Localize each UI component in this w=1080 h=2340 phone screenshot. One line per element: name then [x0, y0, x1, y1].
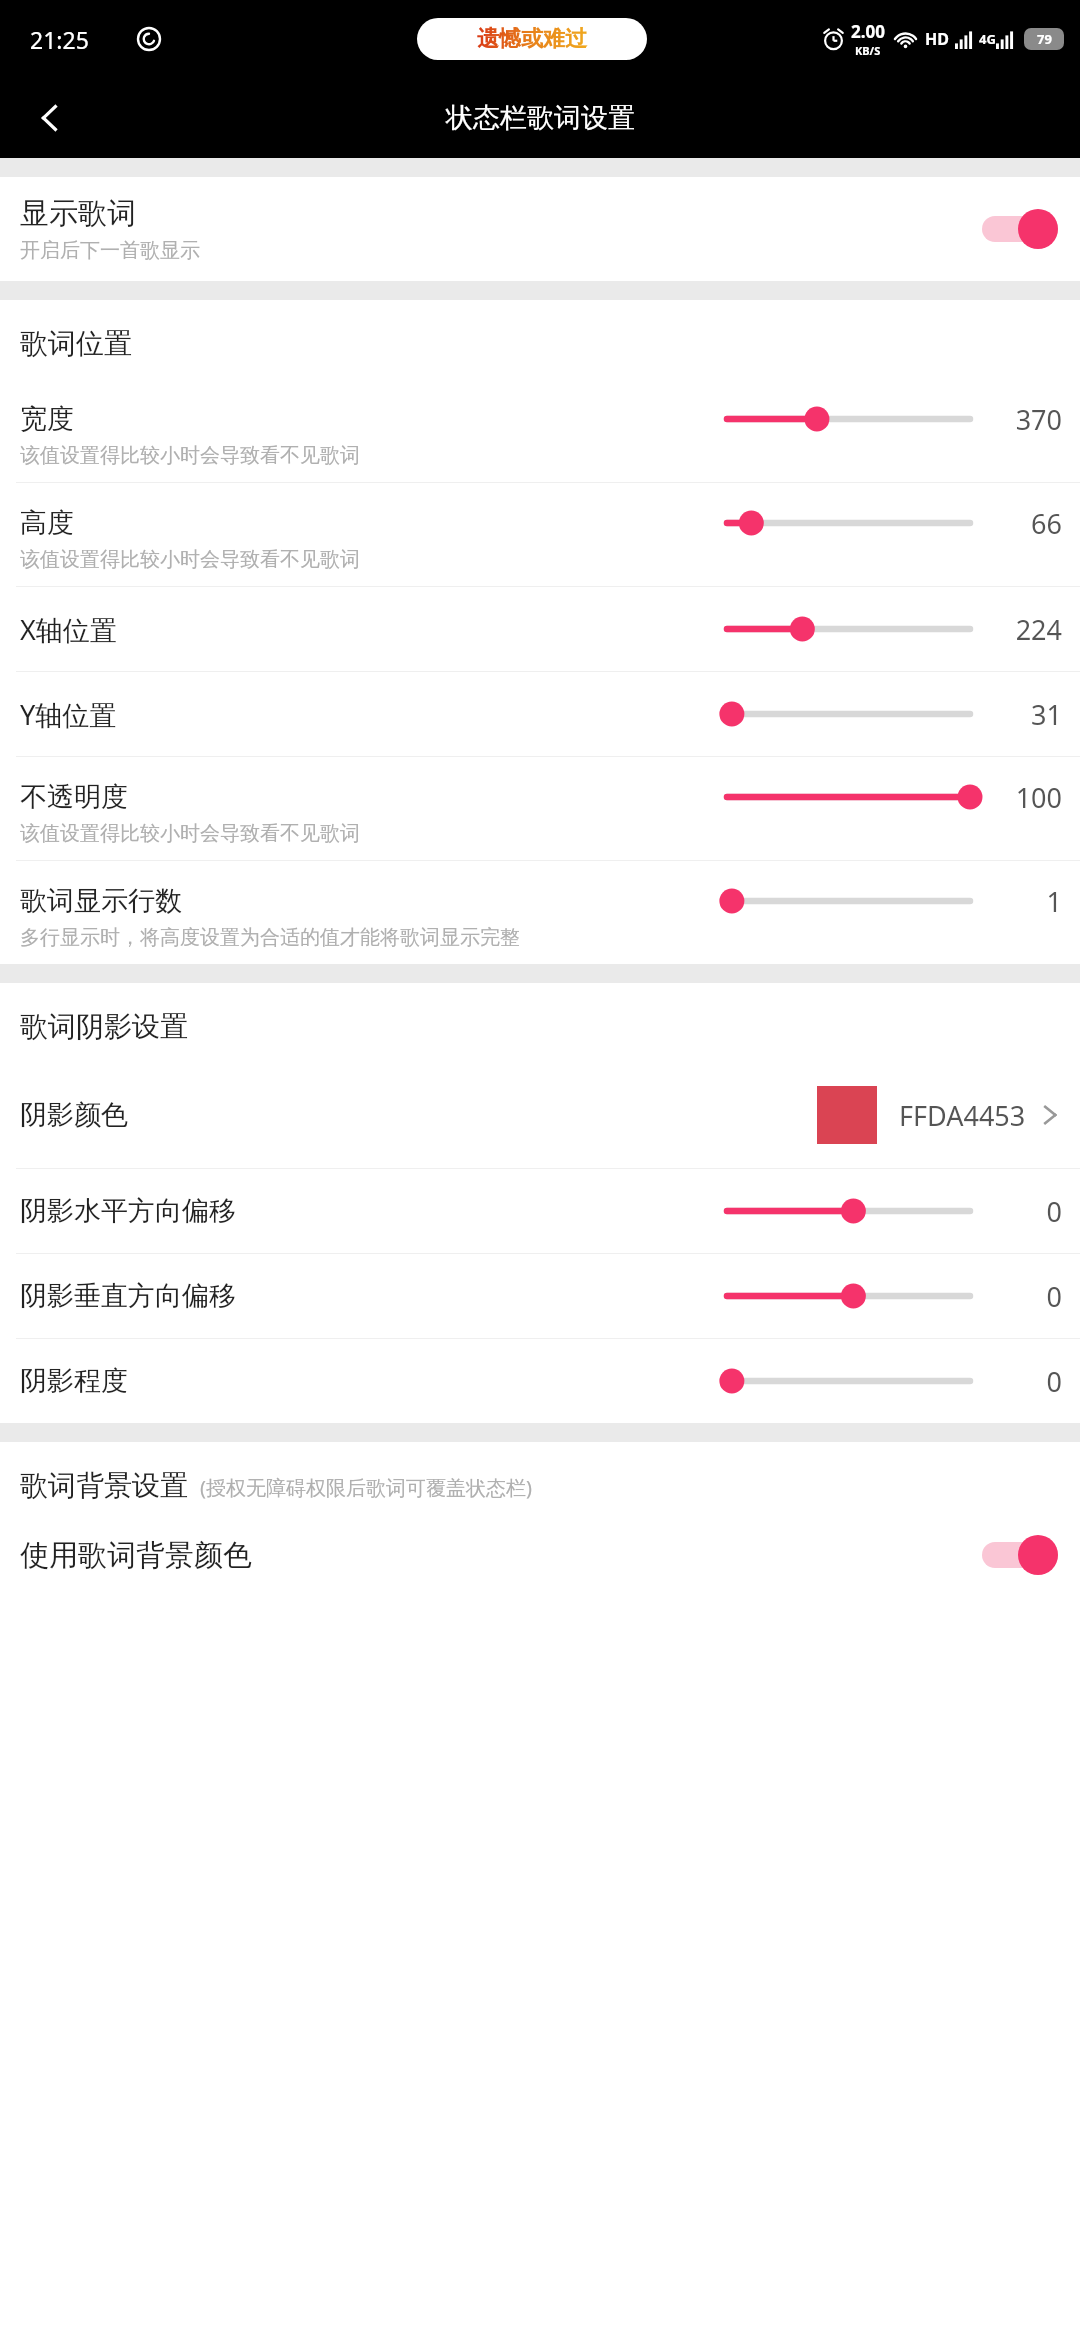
button[interactable]: 歌词显示行数: [0, 861, 1080, 964]
staticText: 0: [1046, 1193, 1062, 1230]
button[interactable]: Y轴位置: [0, 672, 1080, 756]
staticText: KB/S: [855, 43, 881, 58]
staticText: 使用歌词背景颜色: [20, 1537, 982, 1574]
button[interactable]: 宽度: [0, 379, 1080, 482]
button[interactable]: 不透明度: [0, 757, 1080, 860]
staticText: 2.00: [851, 20, 885, 43]
staticText: 224: [1015, 611, 1062, 648]
button[interactable]: X轴位置: [0, 587, 1080, 671]
staticText: 阴影程度: [20, 1364, 727, 1398]
staticText: 阴影颜色: [20, 1098, 817, 1132]
staticText: 66: [1031, 505, 1062, 542]
staticText: 31: [1031, 696, 1062, 733]
staticText: Y轴位置: [20, 696, 727, 733]
staticText: FFDA4453: [899, 1097, 1026, 1134]
staticText: 4G: [979, 30, 996, 48]
staticText: 歌词背景设置: [20, 1468, 188, 1503]
staticText: 0: [1046, 1363, 1062, 1400]
staticText: 该值设置得比较小时会导致看不见歌词: [20, 547, 360, 572]
button[interactable]: Use lyric background color toggle: [982, 1535, 1058, 1575]
staticText: 状态栏歌词设置: [446, 101, 635, 135]
staticText: 0: [1046, 1278, 1062, 1315]
staticText: 1: [1046, 883, 1062, 920]
staticText: 高度: [20, 506, 727, 540]
staticText: (授权无障碍权限后歌词可覆盖状态栏): [200, 1474, 532, 1501]
staticText: HD: [925, 28, 949, 50]
staticText: 阴影垂直方向偏移: [20, 1279, 727, 1313]
staticText: 阴影水平方向偏移: [20, 1194, 727, 1228]
button[interactable]: 阴影水平方向偏移: [0, 1169, 1080, 1253]
button[interactable]: 高度: [0, 483, 1080, 586]
staticText: 歌词位置: [20, 326, 132, 361]
staticText: 遗憾或难过: [477, 25, 587, 53]
staticText: 不透明度: [20, 780, 727, 814]
button[interactable]: 使用歌词背景颜色: [0, 1521, 1080, 1589]
button[interactable]: 阴影颜色: [0, 1062, 1080, 1168]
staticText: 显示歌词: [20, 195, 136, 232]
staticText: 歌词显示行数: [20, 884, 727, 918]
button[interactable]: 阴影垂直方向偏移: [0, 1254, 1080, 1338]
staticText: 多行显示时，将高度设置为合适的值才能将歌词显示完整: [20, 925, 520, 950]
staticText: 79: [1037, 30, 1052, 48]
staticText: 该值设置得比较小时会导致看不见歌词: [20, 821, 360, 846]
button[interactable]: Show lyrics toggle: [982, 209, 1058, 249]
staticText: 开启后下一首歌显示: [20, 238, 200, 263]
staticText: 370: [1015, 401, 1062, 438]
button[interactable]: 显示歌词: [0, 177, 1080, 281]
staticText: 100: [1015, 779, 1062, 816]
staticText: X轴位置: [20, 611, 727, 648]
button[interactable]: Back: [20, 88, 80, 148]
staticText: 该值设置得比较小时会导致看不见歌词: [20, 443, 360, 468]
staticText: 21:25: [30, 24, 89, 55]
staticText: 歌词阴影设置: [20, 1009, 188, 1044]
staticText: 宽度: [20, 402, 727, 436]
button[interactable]: 阴影程度: [0, 1339, 1080, 1423]
